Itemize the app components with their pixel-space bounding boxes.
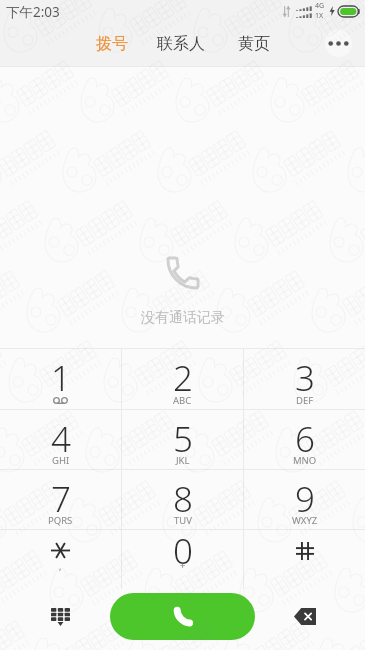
staticText: 0: [173, 527, 193, 575]
button[interactable]: [244, 530, 365, 589]
button[interactable]: 黄页: [234, 28, 274, 60]
staticText: MNO: [293, 454, 317, 467]
button[interactable]: Call: [110, 593, 255, 640]
staticText: ,: [59, 560, 62, 573]
button[interactable]: More options: [325, 30, 352, 57]
staticText: 下午2:03: [6, 3, 60, 21]
button[interactable]: Hide keypad: [41, 601, 79, 639]
button[interactable]: 0: [122, 530, 243, 589]
staticText: 1X: [315, 11, 324, 21]
staticText: 2: [173, 354, 193, 402]
staticText: 1: [51, 354, 71, 402]
staticText: 黄页: [238, 34, 270, 54]
button[interactable]: 4: [0, 410, 121, 469]
button[interactable]: 7: [0, 470, 121, 529]
staticText: 4G: [315, 1, 325, 11]
button[interactable]: ,: [0, 530, 121, 589]
button[interactable]: 2: [122, 349, 243, 409]
button[interactable]: 6: [244, 410, 365, 469]
button[interactable]: Delete: [286, 601, 324, 639]
button[interactable]: 3: [244, 349, 365, 409]
button[interactable]: 9: [244, 470, 365, 529]
staticText: PQRS: [48, 514, 73, 527]
staticText: 5: [173, 415, 193, 463]
staticText: +: [180, 559, 186, 572]
staticText: TUV: [174, 514, 192, 527]
staticText: 4: [51, 415, 71, 463]
staticText: 8: [173, 475, 193, 523]
staticText: 6: [295, 415, 315, 463]
button[interactable]: 5: [122, 410, 243, 469]
staticText: 拨号: [96, 34, 128, 54]
button[interactable]: 1: [0, 349, 121, 409]
button[interactable]: 联系人: [153, 28, 209, 60]
staticText: 没有通话记录: [141, 309, 225, 327]
staticText: DEF: [296, 394, 314, 407]
staticText: 9: [295, 475, 315, 523]
staticText: 3: [295, 354, 315, 402]
button[interactable]: 8: [122, 470, 243, 529]
staticText: GHI: [52, 454, 70, 467]
staticText: 联系人: [157, 34, 205, 54]
staticText: 7: [51, 475, 71, 523]
staticText: JKL: [176, 454, 190, 467]
staticText: WXYZ: [292, 514, 318, 527]
button[interactable]: 拨号: [92, 28, 132, 60]
staticText: ABC: [173, 394, 192, 407]
